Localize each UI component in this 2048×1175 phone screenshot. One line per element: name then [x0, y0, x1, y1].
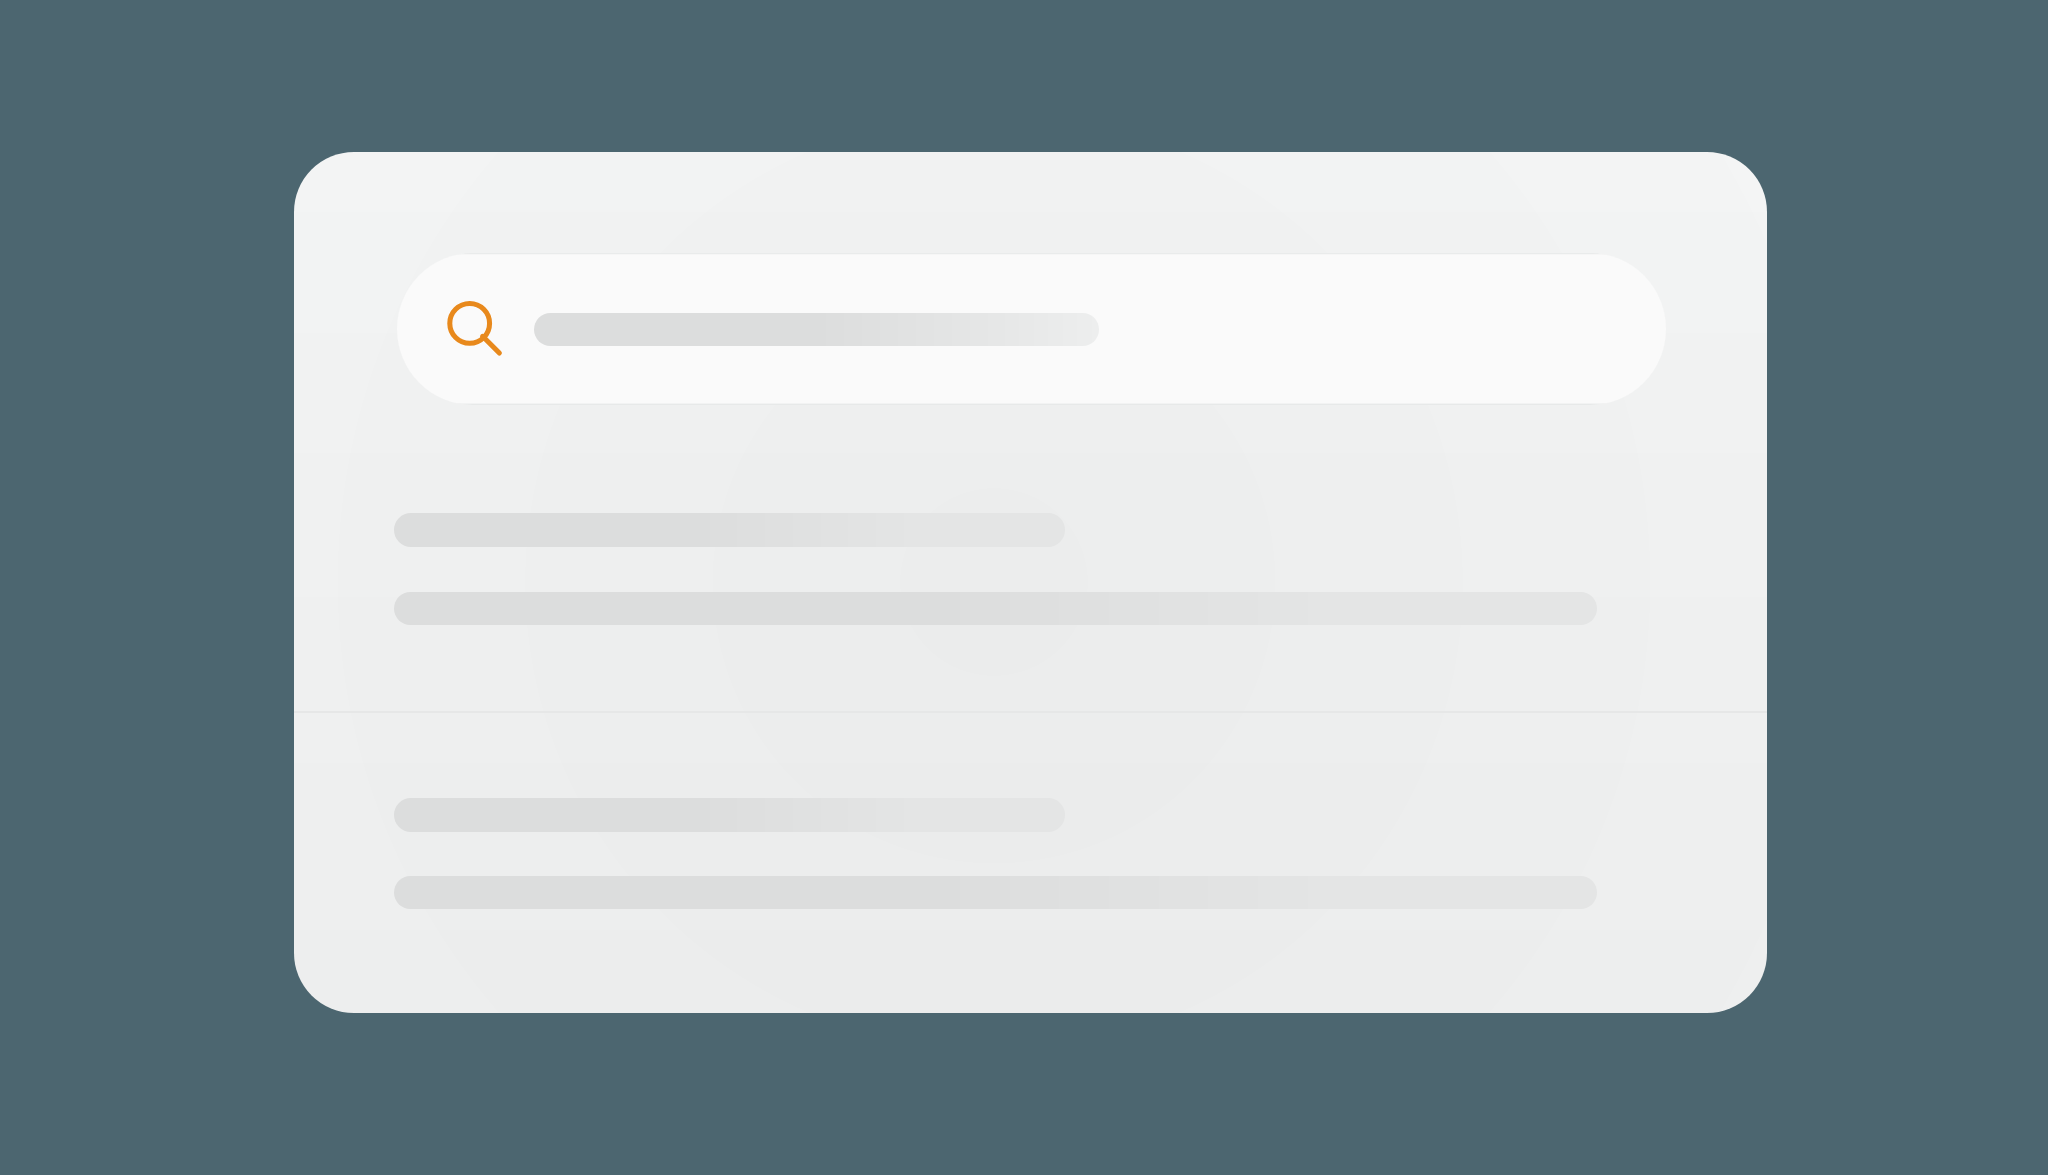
button[interactable]: Search [397, 253, 1666, 405]
other: Search [447, 301, 503, 357]
